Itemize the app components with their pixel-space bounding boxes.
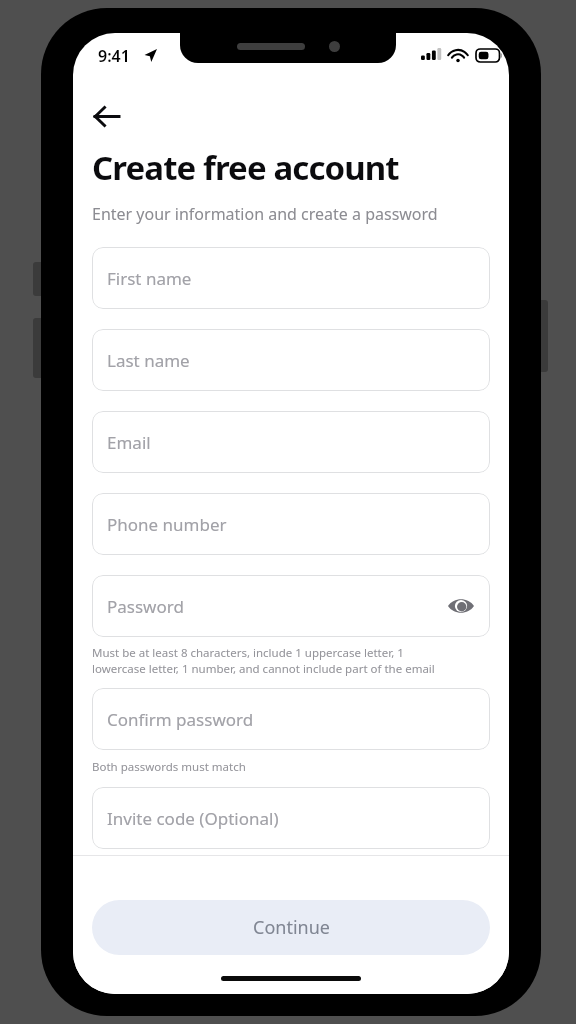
staticText: Must be at least 8 characters, include 1… (92, 645, 435, 676)
staticText: Create free account (92, 145, 399, 190)
staticText: Continue (253, 915, 330, 940)
staticText: Phone number (107, 513, 227, 536)
staticText: First name (107, 267, 192, 290)
button[interactable]: Continue (92, 900, 490, 955)
staticText: Both passwords must match (92, 759, 246, 775)
staticText: Enter your information and create a pass… (92, 203, 438, 225)
button[interactable]: Back (83, 93, 129, 139)
button[interactable]: Phone number (92, 493, 490, 555)
button[interactable]: Show password (441, 586, 481, 626)
button[interactable]: First name (92, 247, 490, 309)
staticText: Email (107, 431, 151, 454)
button[interactable]: Last name (92, 329, 490, 391)
staticText: Password (107, 595, 184, 618)
button[interactable]: Password (92, 575, 490, 637)
button[interactable]: Invite code (Optional) (92, 787, 490, 849)
button[interactable]: Email (92, 411, 490, 473)
staticText: Last name (107, 349, 190, 372)
staticText: Confirm password (107, 708, 254, 731)
staticText: Invite code (Optional) (107, 807, 279, 830)
button[interactable]: Confirm password (92, 688, 490, 750)
staticText: 9:41 (98, 45, 130, 67)
